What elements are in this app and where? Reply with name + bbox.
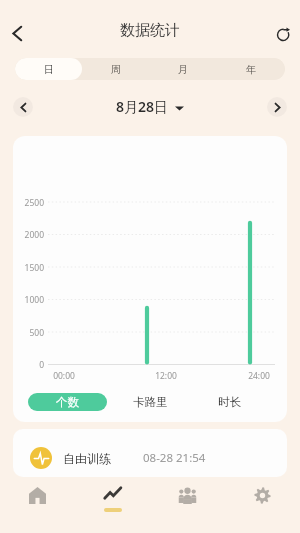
staticText: 1500: [13, 262, 44, 274]
staticText: 0: [13, 359, 44, 371]
button[interactable]: Refresh: [270, 20, 298, 48]
button[interactable]: 个数: [28, 393, 107, 411]
button[interactable]: 自由训练: [13, 429, 287, 477]
staticText: 500: [13, 327, 44, 339]
staticText: 时长: [218, 395, 241, 409]
staticText: 2500: [13, 197, 44, 209]
button[interactable]: Settings: [225, 467, 300, 523]
button[interactable]: Next day: [267, 97, 287, 117]
staticText: 年: [246, 63, 256, 76]
staticText: 卡路里: [133, 395, 168, 409]
staticText: 8月28日: [116, 97, 169, 116]
button[interactable]: 卡路里: [107, 382, 193, 422]
staticText: 周: [111, 63, 121, 76]
staticText: 数据统计: [120, 21, 180, 40]
button[interactable]: 周: [82, 58, 149, 80]
button[interactable]: 8月28日: [33, 90, 267, 123]
staticText: 2000: [13, 229, 44, 241]
staticText: 12:00: [146, 370, 186, 382]
button[interactable]: 年: [217, 58, 285, 80]
button[interactable]: Back: [1, 17, 33, 49]
staticText: 自由训练: [63, 451, 111, 466]
button[interactable]: Home: [0, 467, 75, 523]
staticText: 24:00: [239, 370, 279, 382]
staticText: 日: [44, 63, 54, 76]
staticText: 08-28 21:54: [143, 450, 206, 466]
staticText: 00:00: [44, 370, 84, 382]
staticText: 1000: [13, 294, 44, 306]
staticText: 个数: [56, 395, 79, 409]
button[interactable]: Previous day: [13, 97, 33, 117]
button[interactable]: 日: [15, 58, 82, 80]
button[interactable]: Community: [150, 467, 225, 523]
button[interactable]: Statistics: [75, 467, 150, 523]
button[interactable]: 时长: [193, 382, 266, 422]
button[interactable]: 月: [149, 58, 217, 80]
staticText: 月: [178, 63, 188, 76]
